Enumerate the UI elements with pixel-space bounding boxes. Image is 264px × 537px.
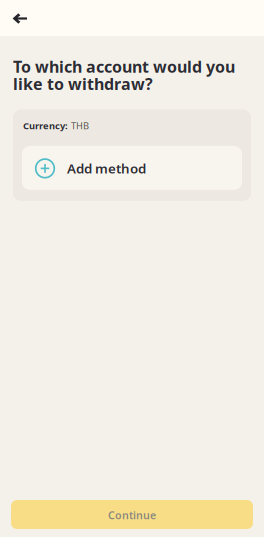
staticText: Continue <box>108 508 156 522</box>
staticText: Currency: <box>23 119 68 132</box>
button[interactable]: Add method <box>22 146 242 190</box>
staticText: To which account would you like to withd… <box>13 56 235 94</box>
button[interactable]: Continue <box>11 500 253 529</box>
staticText: Add method <box>67 159 146 177</box>
staticText: THB <box>71 119 89 132</box>
button[interactable]: Back <box>0 0 37 36</box>
